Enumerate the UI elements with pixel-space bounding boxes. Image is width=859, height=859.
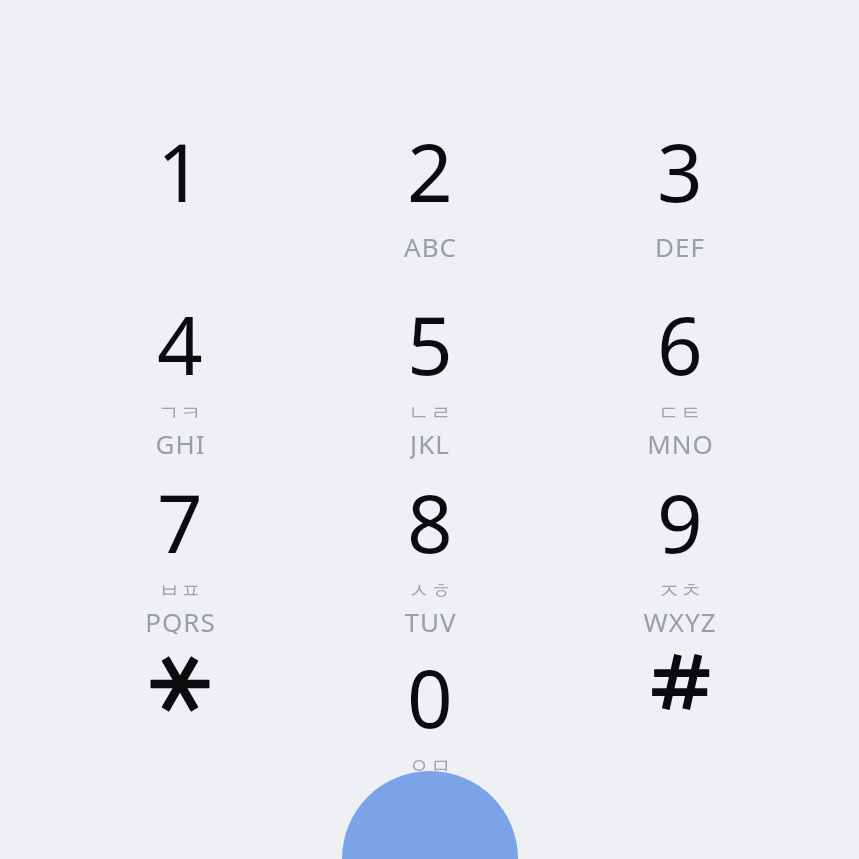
staticText: ㅅㅎ bbox=[408, 578, 452, 604]
button[interactable]: 9 bbox=[600, 459, 760, 634]
staticText: ABC bbox=[404, 229, 457, 264]
staticText: 0 bbox=[407, 642, 453, 751]
button[interactable]: 7 bbox=[100, 459, 260, 634]
staticText: MNO bbox=[647, 426, 714, 459]
staticText: 5 bbox=[407, 289, 453, 398]
staticText: 4 bbox=[157, 289, 203, 398]
staticText: ㅈㅊ bbox=[658, 578, 702, 604]
staticText: WXYZ bbox=[643, 604, 717, 634]
button[interactable]: 5 bbox=[350, 281, 510, 459]
staticText: 7 bbox=[157, 467, 203, 576]
staticText: 1 bbox=[157, 116, 203, 225]
staticText: 9 bbox=[657, 467, 703, 576]
staticText: GHI bbox=[155, 426, 206, 459]
button[interactable]: 4 bbox=[100, 281, 260, 459]
button[interactable]: Call bbox=[342, 771, 518, 859]
staticText: 3 bbox=[657, 116, 703, 225]
button[interactable]: 6 bbox=[600, 281, 760, 459]
button[interactable]: 0 bbox=[350, 634, 510, 809]
staticText: 2 bbox=[407, 116, 453, 225]
staticText: ㄷㅌ bbox=[658, 400, 702, 426]
staticText: PQRS bbox=[145, 604, 216, 634]
staticText: 8 bbox=[407, 467, 453, 576]
staticText: 6 bbox=[657, 289, 703, 398]
button[interactable]: Star bbox=[100, 634, 260, 809]
button[interactable]: 8 bbox=[350, 459, 510, 634]
staticText: ㅂㅍ bbox=[158, 578, 202, 604]
staticText: TUV bbox=[404, 604, 457, 634]
button[interactable]: 1 bbox=[100, 108, 260, 281]
button[interactable]: Pound bbox=[600, 634, 760, 809]
staticText: JKL bbox=[410, 426, 450, 459]
staticText: DEF bbox=[655, 229, 705, 264]
button[interactable]: 2 bbox=[350, 108, 510, 281]
button[interactable]: 3 bbox=[600, 108, 760, 281]
staticText: ㄱㅋ bbox=[158, 400, 202, 426]
staticText: ㄴㄹ bbox=[408, 400, 452, 426]
staticText: ㅇㅁ bbox=[408, 753, 452, 779]
